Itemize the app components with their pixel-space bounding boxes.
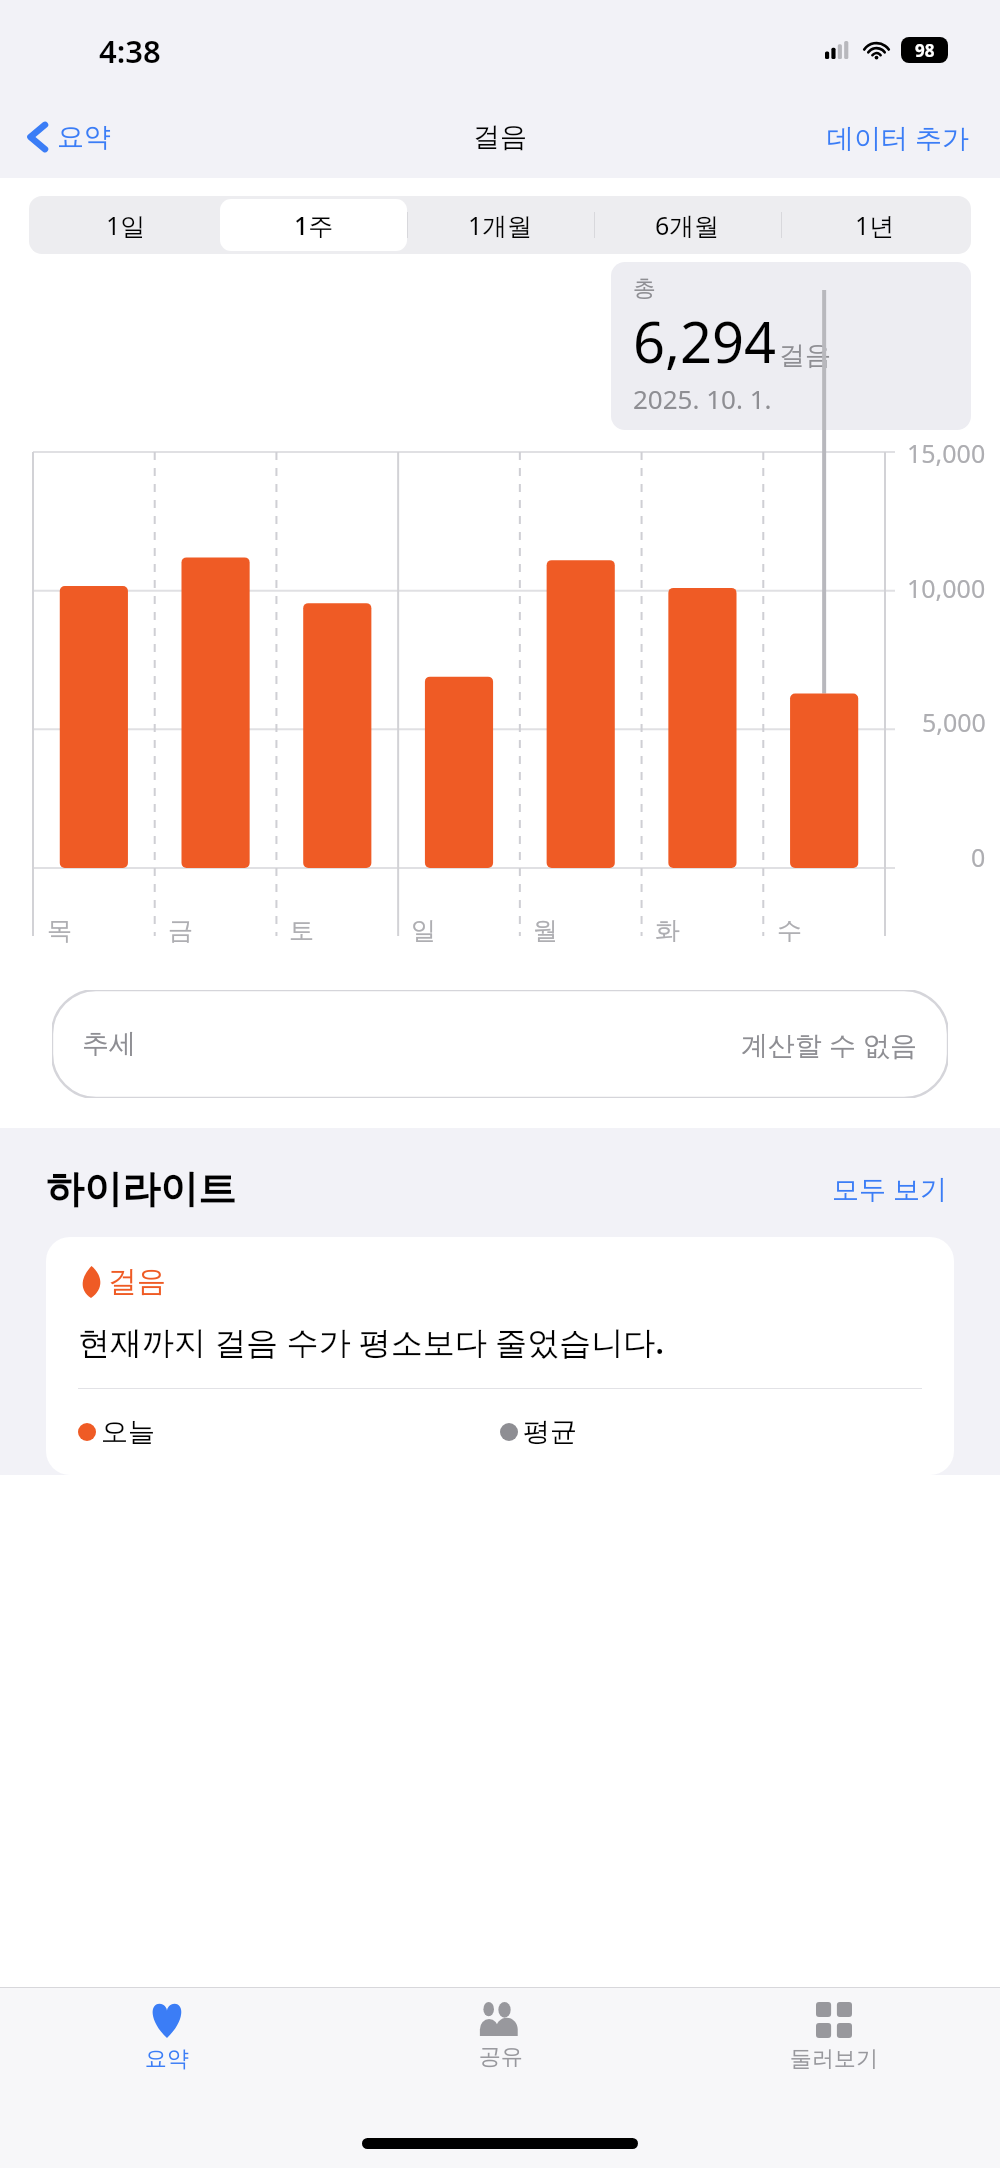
staticText: 0 — [971, 840, 986, 874]
staticText: 추세 — [82, 1027, 136, 1061]
staticText: 월 — [533, 915, 558, 946]
staticText: 걸음 — [473, 120, 527, 154]
staticText: 1개월 — [468, 208, 533, 242]
staticText: 모두 보기 — [832, 1170, 948, 1207]
staticText: 15,000 — [907, 436, 986, 470]
staticText: 10,000 — [907, 571, 986, 605]
staticText: 수 — [777, 915, 802, 946]
staticText: 1주 — [294, 208, 334, 242]
button[interactable]: 데이터 추가 — [821, 111, 976, 164]
staticText: 공유 — [479, 2043, 523, 2071]
button[interactable]: 추세 — [52, 990, 948, 1098]
button[interactable]: 1일 — [32, 199, 220, 251]
other: 요약 — [148, 2002, 186, 2038]
staticText: 총 — [633, 274, 656, 303]
button[interactable]: 공유 — [334, 1988, 667, 2110]
staticText: 요약 — [145, 2045, 189, 2073]
staticText: 계산할 수 없음 — [741, 1026, 918, 1063]
staticText: 평균 — [523, 1415, 577, 1449]
staticText: 둘러보기 — [790, 2045, 878, 2073]
staticText: 걸음 — [779, 339, 831, 372]
other: 둘러보기 — [816, 2002, 852, 2038]
staticText: 2025. 10. 1. — [633, 381, 772, 416]
button[interactable]: 둘러보기 — [667, 1988, 1000, 2110]
staticText: 오늘 — [101, 1415, 155, 1449]
staticText: 현재까지 걸음 수가 평소보다 줄었습니다. — [78, 1320, 665, 1364]
button[interactable]: 6개월 — [594, 199, 781, 251]
staticText: 화 — [655, 915, 680, 946]
staticText: 98 — [915, 39, 935, 62]
staticText: 5,000 — [922, 705, 986, 739]
button[interactable]: 걸음 — [46, 1237, 954, 1475]
staticText: 데이터 추가 — [827, 119, 970, 156]
button[interactable]: 1년 — [781, 199, 968, 251]
staticText: 1년 — [855, 208, 895, 242]
button[interactable]: 모두 보기 — [826, 1164, 954, 1213]
staticText: 1일 — [106, 208, 146, 242]
staticText: 금 — [168, 915, 193, 946]
staticText: 토 — [289, 915, 314, 946]
staticText: 6,294 — [633, 303, 777, 379]
staticText: 요약 — [57, 120, 111, 154]
staticText: 일 — [411, 915, 436, 946]
staticText: 4:38 — [99, 30, 161, 72]
staticText: 목 — [47, 915, 72, 946]
button[interactable]: 요약 — [22, 114, 117, 160]
staticText: 하이라이트 — [46, 1165, 236, 1213]
other: 공유 — [479, 2002, 523, 2036]
button[interactable]: 1주 — [220, 199, 407, 251]
button[interactable]: 1개월 — [407, 199, 594, 251]
button[interactable]: 요약 — [0, 1988, 334, 2110]
staticText: 걸음 — [108, 1263, 166, 1300]
staticText: 6개월 — [655, 208, 720, 242]
